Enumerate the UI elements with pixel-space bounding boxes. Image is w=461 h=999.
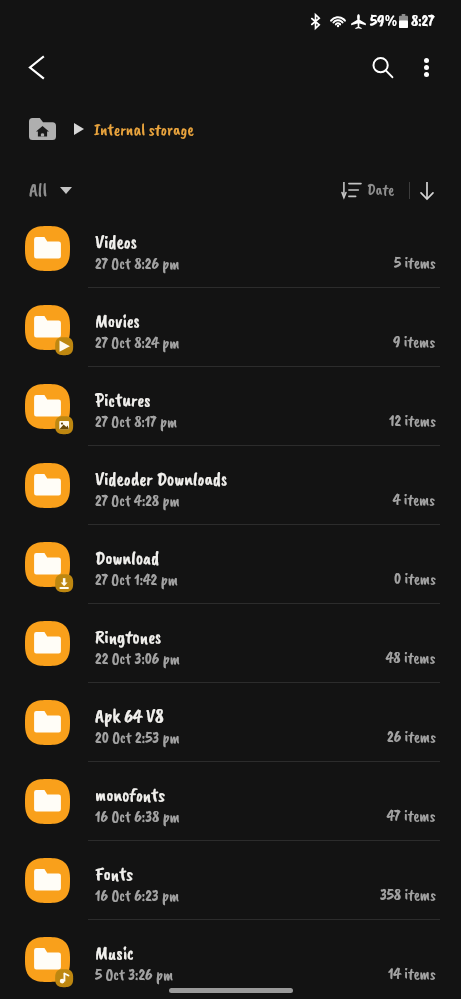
staticText: 27 Oct 4:28 pm: [95, 491, 180, 511]
staticText: 0 items: [394, 569, 436, 589]
staticText: Pictures: [95, 388, 151, 412]
staticText: 16 Oct 6:38 pm: [95, 807, 181, 827]
staticText: Internal storage: [94, 119, 194, 140]
button[interactable]: Fonts: [0, 841, 461, 920]
staticText: 20 Oct 2:53 pm: [95, 728, 180, 748]
staticText: 16 Oct 6:23 pm: [95, 886, 180, 906]
button[interactable]: Sort descending: [417, 176, 437, 204]
staticText: Music: [95, 941, 134, 965]
staticText: Ringtones: [95, 625, 162, 649]
staticText: 27 Oct 8:17 pm: [95, 412, 178, 432]
staticText: Date: [367, 180, 395, 200]
staticText: 47 items: [387, 806, 436, 826]
button[interactable]: More options: [405, 46, 447, 88]
button[interactable]: Videoder Downloads: [0, 446, 461, 525]
staticText: 22 Oct 3:06 pm: [95, 649, 181, 669]
button[interactable]: Music: [0, 920, 461, 999]
staticText: 48 items: [386, 648, 436, 668]
staticText: 5 items: [394, 253, 436, 273]
staticText: Fonts: [95, 862, 134, 886]
button[interactable]: Back: [15, 46, 57, 88]
button[interactable]: Date: [342, 180, 395, 200]
staticText: 14 items: [388, 964, 436, 984]
staticText: 12 items: [389, 411, 436, 431]
button[interactable]: Movies: [0, 288, 461, 367]
staticText: 26 items: [387, 727, 436, 747]
button[interactable]: Search: [361, 46, 403, 88]
staticText: monofonts: [95, 783, 166, 807]
staticText: 5 Oct 3:26 pm: [95, 965, 174, 985]
staticText: 27 Oct 1:42 pm: [95, 570, 179, 590]
staticText: All: [29, 178, 48, 202]
staticText: Videos: [95, 230, 137, 254]
staticText: 27 Oct 8:24 pm: [95, 333, 180, 353]
staticText: 8:27: [411, 11, 435, 31]
button[interactable]: Pictures: [0, 367, 461, 446]
button[interactable]: All: [29, 178, 72, 202]
button[interactable]: Home: [26, 117, 58, 141]
staticText: 27 Oct 8:26 pm: [95, 254, 180, 274]
button[interactable]: Download: [0, 525, 461, 604]
button[interactable]: Apk 64 V8: [0, 683, 461, 762]
button[interactable]: monofonts: [0, 762, 461, 841]
staticText: Download: [95, 546, 160, 570]
button[interactable]: Ringtones: [0, 604, 461, 683]
staticText: Apk 64 V8: [95, 704, 164, 728]
staticText: Movies: [95, 309, 140, 333]
staticText: 358 items: [380, 885, 436, 905]
staticText: 9 items: [393, 332, 436, 352]
staticText: Videoder Downloads: [95, 467, 228, 491]
staticText: 59%: [370, 11, 398, 31]
button[interactable]: Internal storage: [94, 119, 194, 140]
button[interactable]: Videos: [0, 209, 461, 288]
staticText: 4 items: [393, 490, 436, 510]
